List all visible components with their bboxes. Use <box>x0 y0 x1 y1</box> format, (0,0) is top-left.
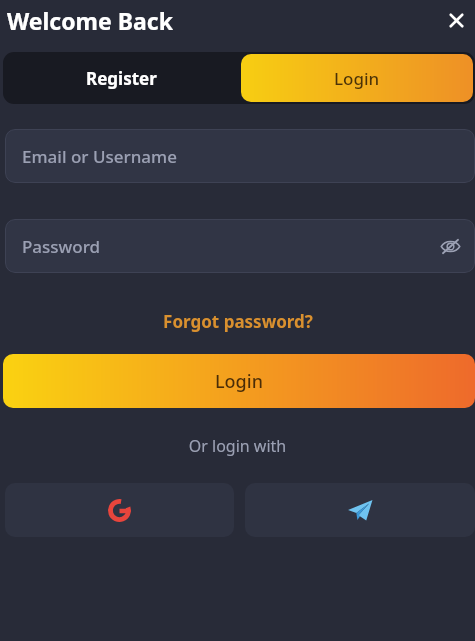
staticText: Email or Username <box>22 145 177 168</box>
button[interactable]: Sign in with Google <box>5 483 234 537</box>
button[interactable]: Close <box>440 4 472 36</box>
button[interactable]: Forgot password? <box>0 302 475 340</box>
button[interactable]: Login <box>241 54 473 102</box>
button[interactable]: Password <box>5 219 475 273</box>
staticText: Login <box>215 369 263 394</box>
staticText: Password <box>22 235 101 258</box>
button[interactable]: Email or Username <box>5 129 475 183</box>
button[interactable]: Login <box>3 354 475 408</box>
button[interactable]: Register <box>3 52 239 104</box>
staticText: Welcome Back <box>7 5 173 36</box>
staticText: Or login with <box>0 435 475 457</box>
button[interactable]: Sign in with Telegram <box>245 483 475 537</box>
button[interactable]: Show password <box>435 231 465 261</box>
staticText: Login <box>334 67 380 90</box>
staticText: Forgot password? <box>163 310 313 333</box>
staticText: Register <box>86 67 157 90</box>
